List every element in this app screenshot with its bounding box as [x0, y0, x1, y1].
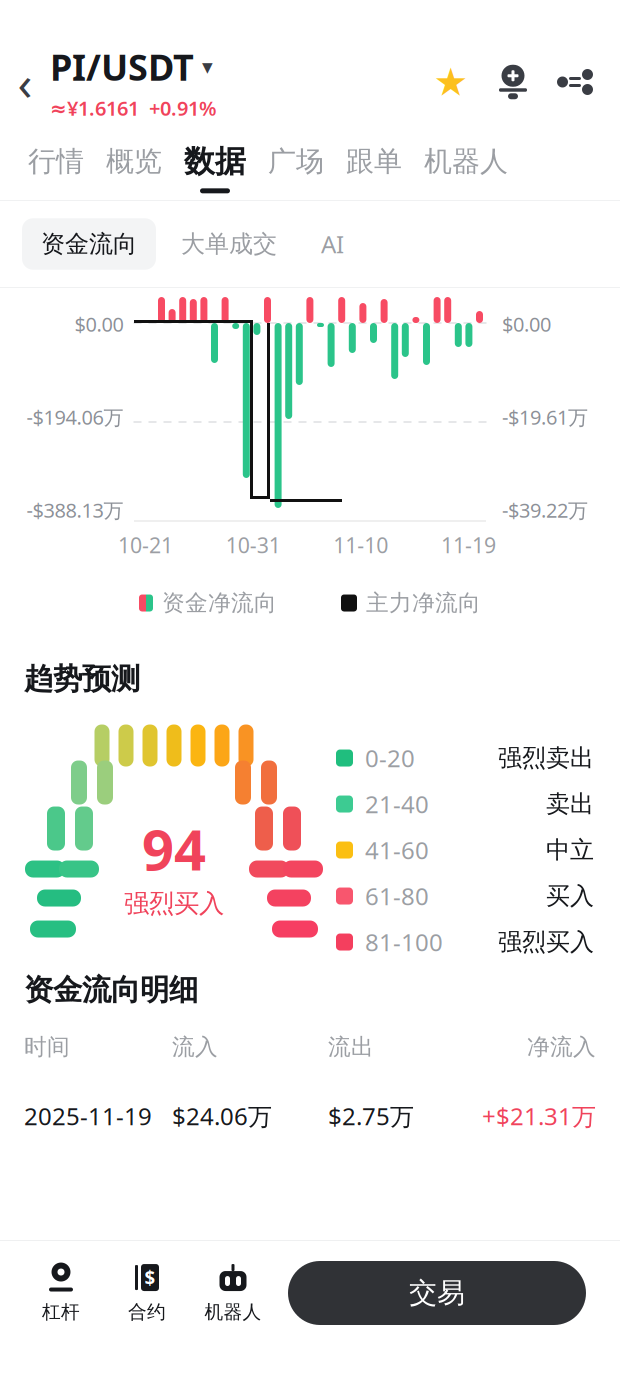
staticText: 机器人	[424, 144, 508, 179]
staticText: 净流入	[527, 1033, 596, 1061]
button[interactable]: 大单成交	[162, 218, 296, 270]
button[interactable]: 跟单	[335, 136, 413, 192]
staticText: 合约	[128, 1300, 166, 1323]
staticText: 2025-11-19	[24, 1100, 152, 1132]
staticText: 资金流向明细	[24, 972, 198, 1008]
staticText: 概览	[106, 144, 162, 179]
staticText: 杠杆	[42, 1300, 80, 1323]
button[interactable]: Back	[0, 52, 50, 112]
staticText: $24.06万	[172, 1100, 272, 1132]
staticText: -$194.06万	[26, 404, 123, 430]
staticText: ‹	[17, 50, 32, 114]
staticText: 41-60	[365, 834, 429, 866]
staticText: 21-40	[365, 788, 429, 820]
staticText: $0.00	[502, 311, 551, 337]
staticText: 机器人	[204, 1300, 261, 1323]
button[interactable]: Share	[556, 63, 594, 101]
staticText: -$19.61万	[502, 404, 588, 430]
staticText: 10-31	[226, 531, 281, 559]
staticText: $	[144, 1265, 155, 1290]
staticText: 流入	[172, 1033, 218, 1061]
staticText: 时间	[24, 1033, 70, 1061]
staticText: 资金流向	[41, 229, 137, 259]
button[interactable]: 资金流向	[22, 218, 156, 270]
staticText: -$39.22万	[502, 497, 588, 523]
staticText: 强烈买入	[124, 888, 224, 919]
staticText: 10-21	[118, 531, 173, 559]
staticText: +$21.31万	[482, 1100, 596, 1132]
staticText: 交易	[409, 1276, 465, 1310]
staticText: 数据	[184, 143, 246, 180]
button[interactable]: 交易	[288, 1261, 586, 1325]
staticText: 买入	[546, 881, 594, 911]
staticText: 行情	[28, 144, 84, 179]
staticText: 跟单	[346, 144, 402, 179]
staticText: 81-100	[365, 926, 443, 958]
button[interactable]: 行情	[17, 136, 95, 192]
staticText: 11-19	[441, 531, 496, 559]
staticText: $0.00	[74, 311, 123, 337]
staticText: PI/USDT	[50, 43, 194, 91]
button[interactable]: 机器人	[190, 1255, 276, 1331]
staticText: ★	[433, 60, 468, 104]
button[interactable]: Favorite	[432, 63, 470, 101]
staticText: ≈¥1.6161 +0.91%	[50, 95, 217, 121]
staticText: $2.75万	[328, 1100, 414, 1132]
staticText: 主力净流向	[366, 589, 481, 617]
staticText: -$388.13万	[26, 497, 123, 523]
staticText: 61-80	[365, 880, 429, 912]
staticText: 流出	[328, 1033, 374, 1061]
button[interactable]: Price alert	[494, 63, 532, 101]
staticText: ▾	[202, 55, 213, 79]
staticText: 大单成交	[181, 229, 277, 259]
button[interactable]: PI/USDT	[50, 43, 213, 91]
staticText: 强烈买入	[498, 927, 594, 957]
button[interactable]: 杠杆	[18, 1255, 104, 1331]
staticText: 卖出	[546, 789, 594, 819]
staticText: 趋势预测	[24, 661, 140, 697]
button[interactable]: $	[104, 1255, 190, 1331]
staticText: AI	[321, 228, 344, 260]
staticText: 94	[142, 811, 206, 886]
staticText: 中立	[546, 835, 594, 865]
staticText: 强烈卖出	[498, 743, 594, 773]
button[interactable]: 广场	[257, 136, 335, 192]
button[interactable]: 机器人	[413, 136, 519, 192]
button[interactable]: 数据	[173, 135, 257, 193]
staticText: 11-10	[333, 531, 388, 559]
staticText: 广场	[268, 144, 324, 179]
staticText: 0-20	[365, 742, 415, 774]
button[interactable]: AI	[302, 217, 363, 271]
staticText: 资金净流向	[162, 589, 277, 617]
button[interactable]: 概览	[95, 136, 173, 192]
